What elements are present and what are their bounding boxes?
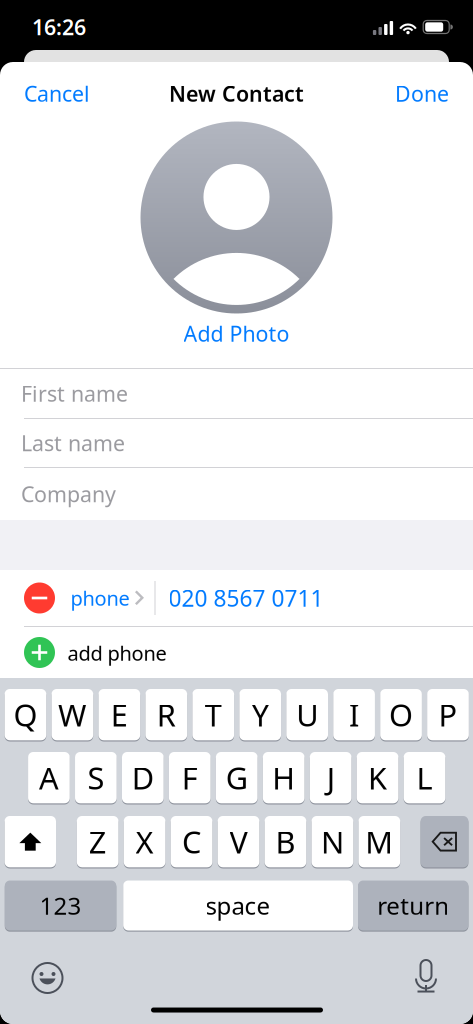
button[interactable]: Q bbox=[5, 688, 46, 741]
button[interactable]: S bbox=[75, 751, 117, 804]
staticText: T bbox=[205, 694, 222, 735]
staticText: I bbox=[349, 694, 359, 735]
staticText: Y bbox=[252, 694, 269, 735]
button[interactable]: I bbox=[333, 688, 375, 741]
staticText: 123 bbox=[39, 890, 81, 921]
staticText: C bbox=[182, 821, 201, 862]
staticText: Add Photo bbox=[183, 319, 289, 348]
button[interactable]: B bbox=[265, 815, 306, 868]
staticText: add phone bbox=[67, 640, 166, 666]
button[interactable]: 123 bbox=[5, 879, 116, 931]
button[interactable]: P bbox=[427, 688, 469, 741]
button[interactable]: X bbox=[124, 815, 165, 868]
button[interactable]: U bbox=[286, 688, 328, 741]
button[interactable]: T bbox=[192, 688, 234, 741]
staticText: New Contact bbox=[169, 79, 304, 108]
staticText: P bbox=[438, 694, 457, 735]
staticText: D bbox=[132, 757, 154, 798]
staticText: 020 8567 0711 bbox=[168, 583, 323, 613]
button[interactable]: Done bbox=[395, 71, 449, 116]
button[interactable]: Shift bbox=[5, 815, 56, 868]
staticText: L bbox=[416, 757, 432, 798]
button[interactable]: return bbox=[358, 879, 468, 931]
staticText: B bbox=[275, 821, 295, 862]
button[interactable]: space bbox=[123, 879, 353, 931]
button[interactable]: W bbox=[52, 688, 93, 741]
button[interactable]: F bbox=[169, 751, 211, 804]
button[interactable]: phone bbox=[0, 570, 473, 626]
staticText: phone bbox=[70, 585, 129, 611]
staticText: A bbox=[39, 757, 59, 798]
staticText: S bbox=[87, 757, 104, 798]
staticText: space bbox=[206, 890, 271, 921]
button[interactable]: H bbox=[263, 751, 304, 804]
staticText: N bbox=[321, 821, 344, 862]
button[interactable] bbox=[5, 815, 56, 868]
button[interactable]: Last name bbox=[0, 419, 473, 467]
staticText: Z bbox=[89, 821, 107, 862]
staticText: Q bbox=[13, 694, 37, 735]
button[interactable]: C bbox=[171, 815, 212, 868]
button[interactable]: L bbox=[404, 751, 445, 804]
staticText: F bbox=[182, 757, 198, 798]
button[interactable]: O bbox=[380, 688, 422, 741]
staticText: V bbox=[229, 821, 247, 862]
staticText: O bbox=[389, 694, 413, 735]
button[interactable]: Add Photo bbox=[173, 313, 299, 354]
staticText: W bbox=[58, 694, 87, 735]
staticText: Company bbox=[21, 480, 116, 508]
button[interactable]: Company bbox=[0, 468, 473, 520]
staticText: 16:26 bbox=[32, 13, 86, 41]
button[interactable]: First name bbox=[0, 369, 473, 418]
button[interactable]: M bbox=[358, 815, 400, 868]
button[interactable]: Cancel bbox=[24, 71, 90, 116]
button[interactable]: add phone bbox=[0, 627, 473, 678]
staticText: J bbox=[327, 757, 335, 798]
staticText: Done bbox=[395, 79, 449, 108]
button[interactable]: K bbox=[357, 751, 398, 804]
button[interactable]: A bbox=[28, 751, 70, 804]
button[interactable]: Dictation bbox=[412, 959, 440, 993]
button[interactable] bbox=[421, 815, 468, 868]
staticText: U bbox=[296, 694, 318, 735]
staticText: H bbox=[272, 757, 295, 798]
staticText: First name bbox=[21, 379, 128, 408]
button[interactable]: E bbox=[98, 688, 140, 741]
button[interactable]: V bbox=[218, 815, 259, 868]
button[interactable]: Z bbox=[77, 815, 118, 868]
staticText: M bbox=[365, 821, 393, 862]
button[interactable]: N bbox=[311, 815, 353, 868]
staticText: R bbox=[157, 694, 176, 735]
button[interactable]: J bbox=[310, 751, 351, 804]
button[interactable]: Contact photo bbox=[140, 121, 332, 313]
staticText: E bbox=[111, 694, 128, 735]
staticText: Cancel bbox=[24, 79, 90, 108]
button[interactable]: Y bbox=[239, 688, 281, 741]
button[interactable]: R bbox=[145, 688, 187, 741]
button[interactable]: Emoji bbox=[31, 962, 63, 994]
staticText: G bbox=[226, 757, 248, 798]
staticText: return bbox=[377, 890, 449, 921]
button[interactable]: Delete bbox=[421, 815, 468, 868]
button[interactable]: G bbox=[216, 751, 258, 804]
staticText: X bbox=[136, 821, 154, 862]
staticText: K bbox=[368, 757, 387, 798]
staticText: Last name bbox=[21, 429, 125, 457]
button[interactable]: D bbox=[122, 751, 164, 804]
